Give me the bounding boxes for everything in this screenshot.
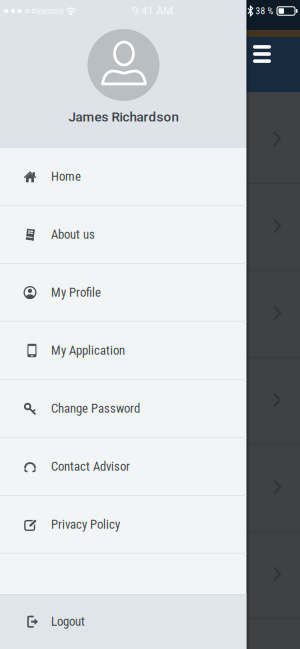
staticText: 38 % [255,5,273,16]
staticText: Logout [51,614,85,629]
staticText: Contact Advisor [51,459,130,474]
button[interactable]: My Profile [0,264,246,322]
button[interactable]: Home [0,148,246,206]
staticText: Privacy Policy [51,517,120,532]
staticText: About us [51,227,95,242]
button[interactable]: Privacy Policy [0,496,246,554]
button[interactable]: About us [0,206,246,264]
staticText: Verizon [36,5,64,16]
button[interactable]: Menu [249,41,275,67]
staticText: 9:41 AM [132,4,173,18]
staticText: Change Password [51,401,140,416]
staticText: James Richardson [68,109,178,125]
button[interactable]: Logout [0,594,246,649]
staticText: My Application [51,343,125,358]
button[interactable]: Contact Advisor [0,438,246,496]
staticText: My Profile [51,285,101,300]
staticText: Home [51,169,81,184]
button[interactable]: My Application [0,322,246,380]
button[interactable]: Change Password [0,380,246,438]
